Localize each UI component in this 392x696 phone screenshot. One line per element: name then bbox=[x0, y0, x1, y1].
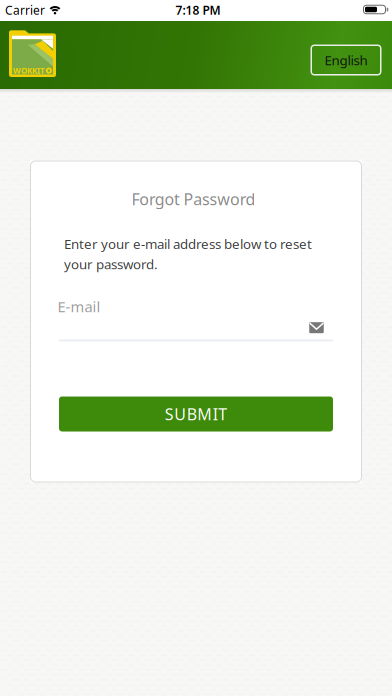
staticText: 7:18 PM bbox=[175, 2, 220, 18]
staticText: Carrier bbox=[5, 2, 45, 18]
staticText: SUBMIT bbox=[165, 403, 227, 425]
staticText: Forgot Password bbox=[132, 188, 255, 210]
staticText: E-mail bbox=[57, 297, 100, 316]
staticText: Enter your e-mail address below to reset bbox=[64, 235, 312, 253]
staticText: English bbox=[324, 51, 367, 69]
staticText: WOKKIT bbox=[13, 65, 45, 76]
staticText: your password. bbox=[64, 255, 158, 273]
